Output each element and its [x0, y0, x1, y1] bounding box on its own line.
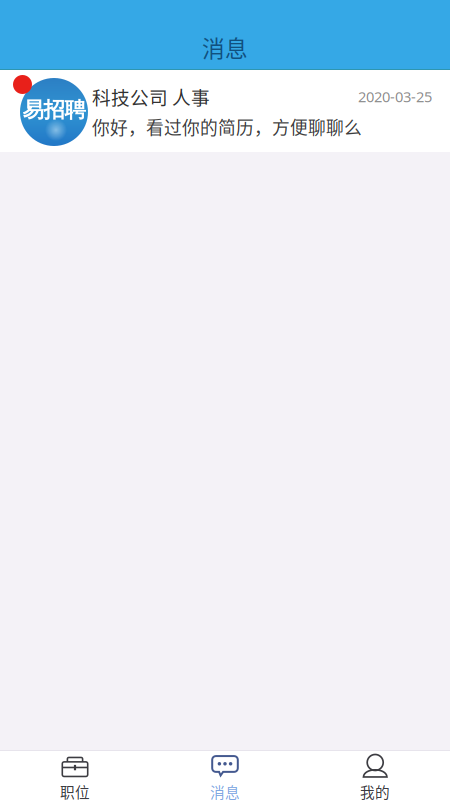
staticText: 我的: [360, 781, 390, 800]
staticText: 消息: [202, 31, 248, 63]
staticText: 2020-03-25: [358, 87, 432, 106]
staticText: 职位: [60, 781, 90, 800]
button[interactable]: 易招聘: [0, 70, 450, 152]
staticText: 消息: [210, 781, 240, 800]
staticText: 你好，看过你的简历，方便聊聊么: [92, 114, 362, 140]
staticText: 科技公司 人事: [92, 83, 210, 110]
staticText: 易招聘: [22, 97, 85, 123]
button[interactable]: 我的: [300, 744, 450, 800]
button[interactable]: 消息: [150, 744, 300, 800]
button[interactable]: 职位: [0, 744, 150, 800]
